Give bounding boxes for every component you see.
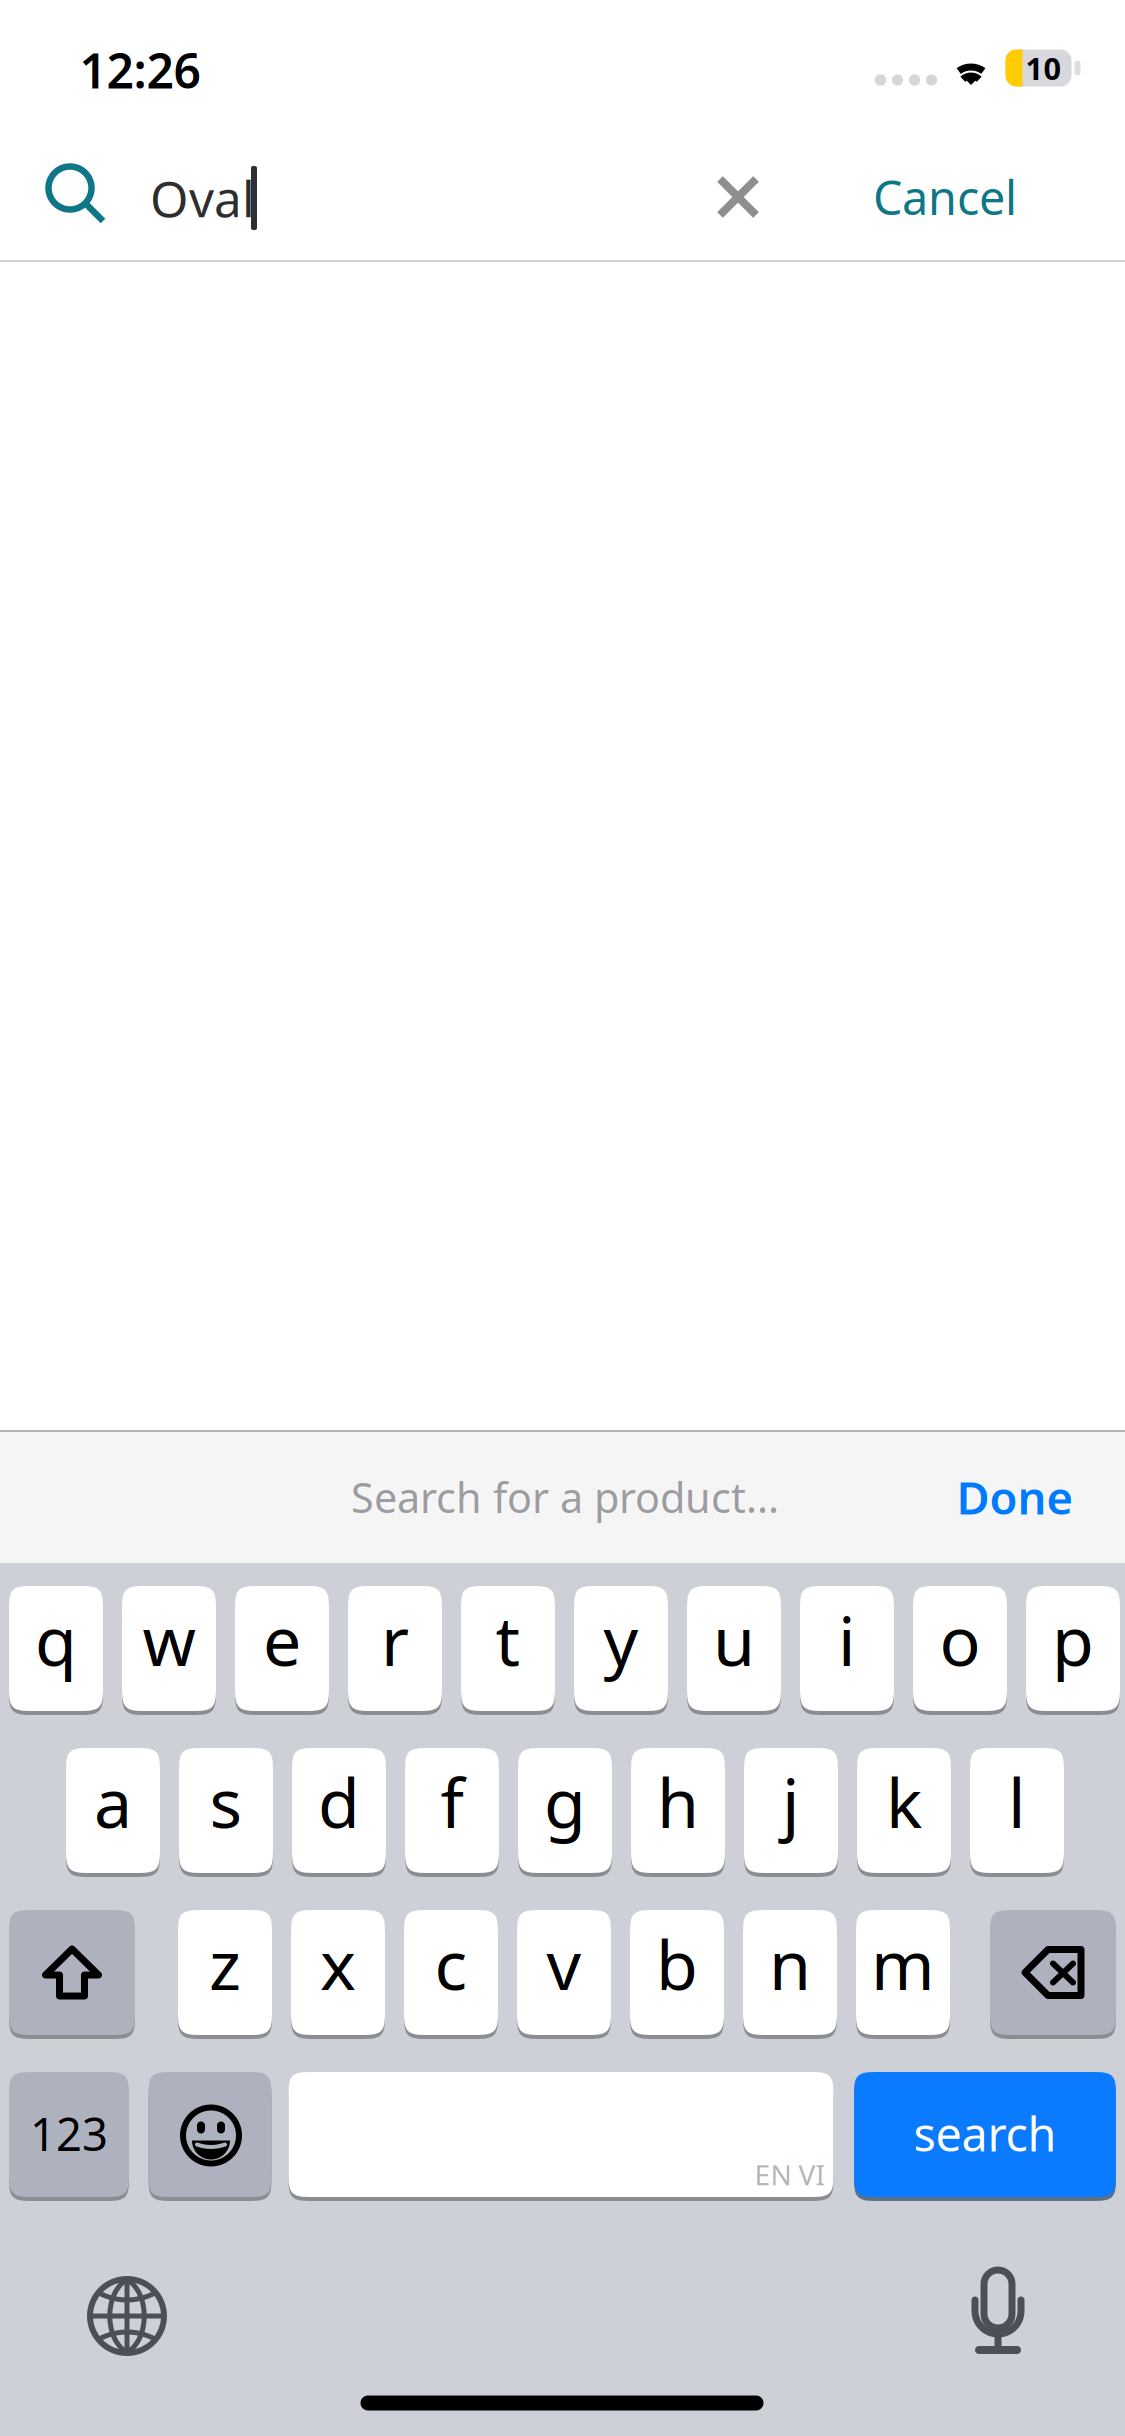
- button[interactable]: o: [913, 1584, 1007, 1713]
- button[interactable]: e: [235, 1584, 329, 1713]
- staticText: x: [320, 1918, 356, 2009]
- button[interactable]: search: [854, 2070, 1116, 2199]
- button[interactable]: n: [743, 1908, 837, 2037]
- staticText: h: [657, 1756, 699, 1847]
- button[interactable]: i: [800, 1584, 894, 1713]
- staticText: Cancel: [873, 166, 1017, 228]
- staticText: l: [1008, 1756, 1026, 1847]
- staticText: r: [381, 1594, 409, 1685]
- staticText: o: [939, 1594, 980, 1685]
- button[interactable]: Next keyboard: [67, 2256, 187, 2376]
- button[interactable]: g: [518, 1746, 612, 1875]
- button[interactable]: w: [122, 1584, 216, 1713]
- staticText: j: [782, 1756, 800, 1847]
- staticText: Done: [956, 1467, 1073, 1527]
- button[interactable]: c: [404, 1908, 498, 2037]
- staticText: 12:26: [79, 38, 200, 102]
- staticText: g: [544, 1756, 586, 1847]
- button[interactable]: k: [857, 1746, 951, 1875]
- staticText: u: [713, 1594, 755, 1685]
- button[interactable]: d: [292, 1746, 386, 1875]
- button[interactable]: t: [461, 1584, 555, 1713]
- button[interactable]: a: [66, 1746, 160, 1875]
- staticText: t: [495, 1594, 520, 1685]
- staticText: 123: [30, 2103, 108, 2164]
- button[interactable]: p: [1026, 1584, 1120, 1713]
- button[interactable]: v: [517, 1908, 611, 2037]
- button[interactable]: q: [9, 1584, 103, 1713]
- staticText: w: [142, 1594, 195, 1685]
- staticText: y: [603, 1594, 638, 1685]
- button[interactable]: s: [179, 1746, 273, 1875]
- button[interactable]: Dictation: [938, 2251, 1058, 2371]
- staticText: m: [871, 1918, 935, 2009]
- staticText: d: [318, 1756, 360, 1847]
- button[interactable]: Shift: [9, 1908, 135, 2037]
- staticText: i: [838, 1594, 856, 1685]
- button[interactable]: x: [291, 1908, 385, 2037]
- staticText: search: [913, 2102, 1056, 2164]
- staticText: q: [35, 1594, 77, 1685]
- staticText: v: [546, 1918, 581, 2009]
- staticText: n: [769, 1918, 811, 2009]
- button[interactable]: y: [574, 1584, 668, 1713]
- button[interactable]: Clear search text: [683, 142, 793, 252]
- button[interactable]: Done: [925, 1447, 1105, 1547]
- button[interactable]: space: [288, 2070, 833, 2199]
- button[interactable]: h: [631, 1746, 725, 1875]
- staticText: EN VI: [754, 2156, 824, 2193]
- button[interactable]: Cancel: [830, 142, 1060, 252]
- staticText: b: [656, 1918, 698, 2009]
- button[interactable]: r: [348, 1584, 442, 1713]
- staticText: p: [1052, 1594, 1094, 1685]
- staticText: k: [886, 1756, 922, 1847]
- staticText: Search for a product...: [351, 1470, 779, 1524]
- staticText: e: [263, 1594, 301, 1685]
- button[interactable]: m: [856, 1908, 950, 2037]
- button[interactable]: 123: [9, 2070, 129, 2199]
- staticText: Oval: [150, 165, 255, 231]
- button[interactable]: z: [178, 1908, 272, 2037]
- button[interactable]: j: [744, 1746, 838, 1875]
- staticText: a: [94, 1756, 132, 1847]
- staticText: c: [434, 1918, 467, 2009]
- button[interactable]: l: [970, 1746, 1064, 1875]
- button[interactable]: b: [630, 1908, 724, 2037]
- staticText: s: [209, 1756, 242, 1847]
- button[interactable]: u: [687, 1584, 781, 1713]
- staticText: 10: [1025, 48, 1061, 88]
- button[interactable]: Emoji keyboard: [148, 2070, 271, 2199]
- button[interactable]: Delete: [990, 1908, 1116, 2037]
- button[interactable]: f: [405, 1746, 499, 1875]
- staticText: z: [209, 1918, 241, 2009]
- staticText: f: [440, 1756, 463, 1847]
